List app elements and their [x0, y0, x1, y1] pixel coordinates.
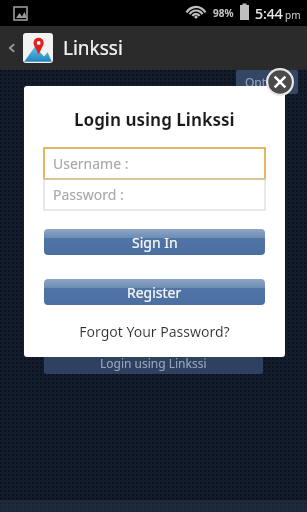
staticText: Password :: [53, 185, 124, 204]
staticText: Login using Linkssi: [100, 355, 207, 371]
button[interactable]: Username :: [44, 148, 265, 179]
staticText: Forgot Your Password?: [79, 322, 230, 341]
button[interactable]: Password :: [44, 179, 265, 210]
staticText: Linkssi: [63, 35, 123, 61]
staticText: Options: [245, 74, 290, 90]
button[interactable]: Close: [266, 68, 294, 96]
button[interactable]: Sign In: [44, 229, 265, 255]
button[interactable]: Back: [4, 26, 20, 70]
staticText: Login using Linkssi: [74, 108, 235, 131]
staticText: Register: [127, 283, 182, 302]
button[interactable]: Register: [44, 279, 265, 305]
staticText: 98%: [213, 6, 234, 20]
button[interactable]: Options: [236, 70, 298, 94]
staticText: Username :: [53, 154, 129, 173]
staticText: 5:44: [255, 4, 283, 23]
button[interactable]: Login using Linkssi: [44, 352, 263, 374]
staticText: Sign In: [132, 233, 178, 252]
button[interactable]: Forgot Your Password?: [77, 320, 232, 343]
staticText: pm: [285, 8, 301, 22]
